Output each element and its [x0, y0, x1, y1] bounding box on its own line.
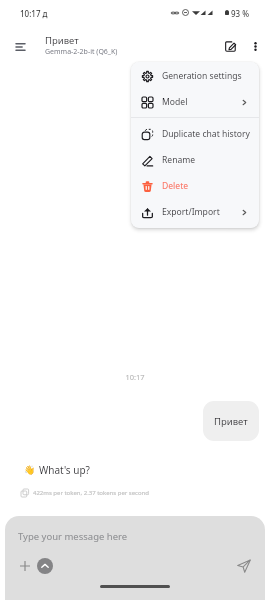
button[interactable]: Generation settings [131, 63, 259, 89]
staticText: Generation settings [162, 70, 242, 82]
staticText: Rename [162, 154, 196, 166]
button[interactable]: New chat [214, 30, 246, 62]
button[interactable]: Menu [3, 30, 37, 64]
staticText: Model [162, 96, 188, 108]
button[interactable]: Send [233, 555, 255, 577]
button[interactable]: Duplicate chat history [131, 121, 259, 147]
staticText: 10:17 [0, 372, 270, 382]
button[interactable]: Expand [37, 558, 53, 574]
staticText: Привет [214, 415, 248, 428]
staticText: 👋 [24, 465, 36, 476]
staticText: Gemma-2-2b-it (Q6_K) [45, 47, 118, 57]
button[interactable]: More options [243, 34, 267, 58]
button[interactable]: Привет [203, 401, 259, 441]
button[interactable]: Delete [131, 173, 259, 199]
staticText: 93 % [231, 8, 250, 19]
button[interactable]: Rename [131, 147, 259, 173]
button[interactable]: Model [131, 89, 259, 115]
staticText: 422ms per token, 2.37 tokens per second [33, 489, 149, 497]
staticText: Type your message here [18, 530, 128, 543]
staticText: Export/Import [162, 206, 220, 218]
staticText: What's up? [39, 463, 90, 477]
button[interactable]: Export/Import [131, 199, 259, 225]
staticText: 10:17 д [20, 8, 48, 19]
staticText: Привет [45, 34, 79, 47]
staticText: Delete [162, 180, 189, 192]
button[interactable]: Attach [14, 555, 35, 576]
staticText: Duplicate chat history [162, 128, 250, 140]
